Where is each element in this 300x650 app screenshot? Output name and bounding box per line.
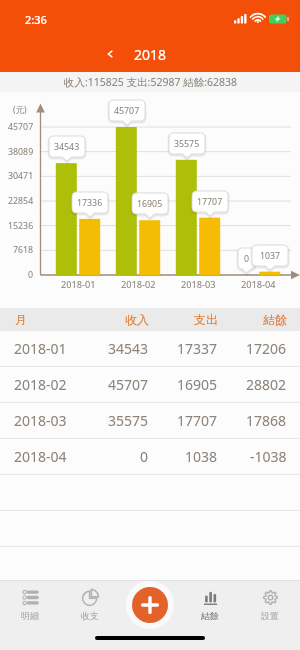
button[interactable]: 2018-04 [0, 439, 300, 474]
button[interactable]: 明細 [0, 581, 60, 624]
staticText: 支出 [194, 312, 218, 327]
staticText: 15236 [8, 220, 34, 232]
staticText: 1037 [260, 250, 281, 262]
button[interactable]: 2018-02 [0, 367, 300, 402]
staticText: 30471 [8, 170, 34, 182]
staticText: 45707 [114, 105, 140, 117]
staticText: 34543 [54, 141, 80, 153]
staticText: 月 [15, 312, 27, 327]
staticText: 45707 [8, 121, 34, 133]
staticText: 收入 [125, 312, 149, 327]
staticText: -1038 [250, 447, 287, 466]
button[interactable]: 2018-03 [0, 403, 300, 438]
button[interactable]: 2018-01 [0, 331, 300, 366]
staticText: 2:36 [25, 12, 47, 27]
staticText: 17337 [177, 339, 218, 358]
staticText: 17707 [177, 411, 218, 430]
staticText: 16905 [137, 198, 163, 210]
staticText: 2018-04 [241, 278, 276, 291]
staticText: 17206 [246, 339, 287, 358]
staticText: 設置 [261, 611, 279, 622]
staticText: 17868 [246, 411, 287, 430]
staticText: 22854 [8, 195, 34, 207]
staticText: 16905 [177, 375, 218, 394]
button[interactable]: 設置 [240, 581, 300, 624]
staticText: 45707 [108, 375, 149, 394]
staticText: 明細 [21, 611, 39, 622]
staticText: 結餘 [263, 312, 287, 327]
button[interactable]: 結餘 [180, 581, 240, 624]
staticText: 2018 [134, 45, 167, 64]
staticText: 2018-02 [14, 375, 67, 394]
button[interactable]: Previous year [98, 42, 122, 66]
staticText: 0 [28, 269, 34, 281]
button[interactable]: Add [132, 587, 168, 623]
staticText: 28802 [246, 375, 287, 394]
staticText: (元) [13, 104, 27, 116]
staticText: 34543 [108, 339, 149, 358]
staticText: 結餘 [201, 611, 219, 622]
staticText: 0 [140, 447, 149, 466]
staticText: 35575 [108, 411, 149, 430]
staticText: 收入:115825 支出:52987 結餘:62838 [64, 75, 237, 89]
staticText: 1038 [185, 447, 218, 466]
button[interactable]: 收支 [60, 581, 120, 624]
staticText: 17707 [197, 196, 223, 208]
staticText: 35575 [174, 138, 200, 150]
staticText: 2018-03 [14, 411, 67, 430]
staticText: 2018-01 [14, 339, 67, 358]
staticText: 38089 [8, 146, 34, 158]
staticText: 2018-01 [61, 278, 96, 291]
staticText: 7618 [13, 244, 34, 256]
staticText: 17336 [77, 197, 103, 209]
staticText: 2018-04 [14, 447, 67, 466]
staticText: 2018-02 [121, 278, 156, 291]
staticText: 0 [244, 253, 250, 265]
staticText: 2018-03 [181, 278, 216, 291]
staticText: 收支 [81, 611, 99, 622]
